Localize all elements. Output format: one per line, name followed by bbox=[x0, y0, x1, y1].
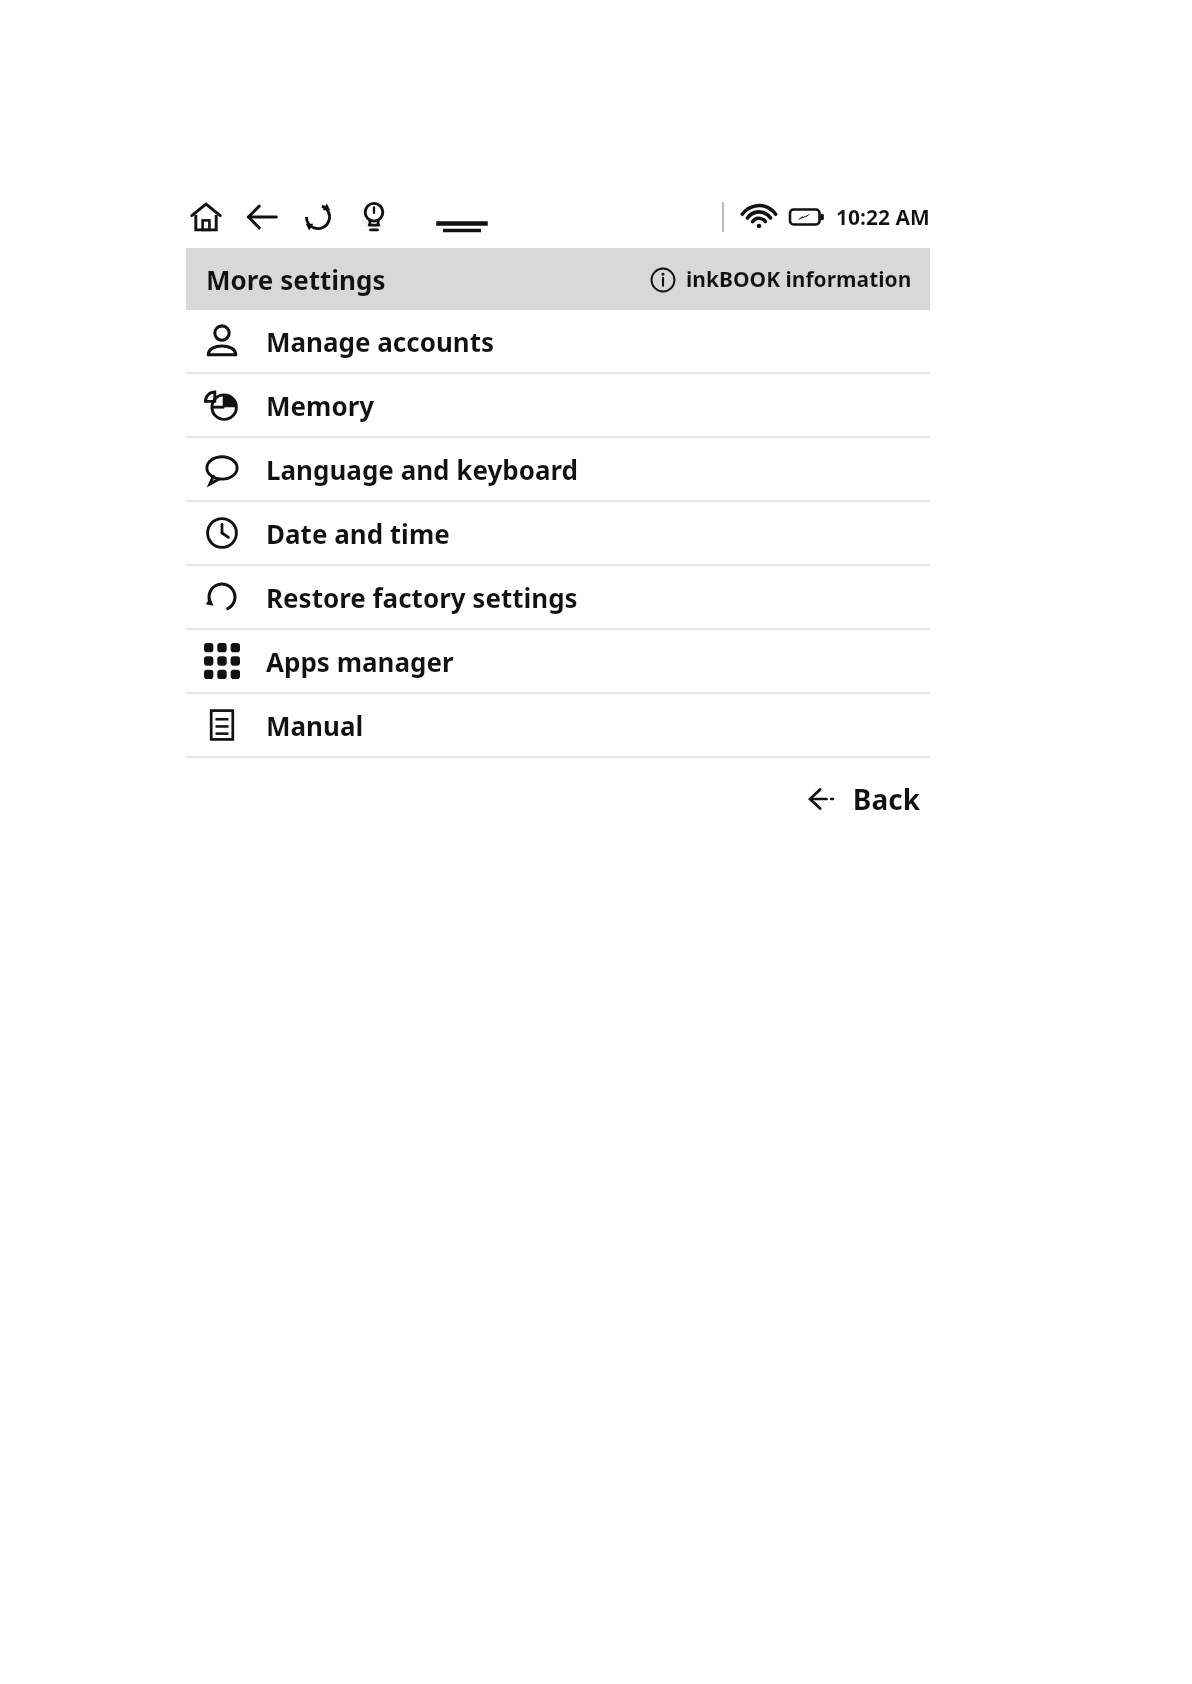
other: Battery charging bbox=[790, 202, 826, 232]
staticText: Date and time bbox=[266, 516, 450, 551]
staticText: Language and keyboard bbox=[266, 452, 579, 487]
button[interactable]: Restore factory settings bbox=[186, 566, 930, 628]
staticText: Memory bbox=[266, 388, 375, 423]
button[interactable]: Date and time bbox=[186, 502, 930, 564]
staticText: Restore factory settings bbox=[266, 580, 578, 615]
button[interactable]: Memory bbox=[186, 374, 930, 436]
staticText: Manage accounts bbox=[266, 324, 495, 359]
button[interactable]: Back bbox=[798, 774, 930, 824]
button[interactable]: inkBOOK information bbox=[646, 261, 916, 298]
staticText: inkBOOK information bbox=[686, 265, 912, 294]
staticText: Manual bbox=[266, 708, 364, 743]
staticText: More settings bbox=[206, 262, 386, 297]
staticText: Apps manager bbox=[266, 644, 454, 679]
button[interactable]: Home bbox=[186, 197, 226, 237]
button[interactable]: Front light bbox=[354, 197, 394, 237]
button[interactable]: Manual bbox=[186, 694, 930, 756]
staticText: Back bbox=[852, 780, 920, 818]
button[interactable]: Apps manager bbox=[186, 630, 930, 692]
button[interactable]: Back bbox=[242, 197, 282, 237]
button[interactable]: Refresh bbox=[298, 197, 338, 237]
button[interactable]: Manage accounts bbox=[186, 310, 930, 372]
other: Wi-Fi bbox=[744, 202, 774, 232]
button[interactable]: Language and keyboard bbox=[186, 438, 930, 500]
staticText: 10:22 AM bbox=[836, 203, 930, 232]
